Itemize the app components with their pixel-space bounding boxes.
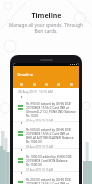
staticText: Timeline bbox=[17, 72, 34, 77]
button[interactable]: Rs 250.00 swiped by JOHN DOE 20190807 15… bbox=[13, 172, 79, 184]
staticText: Timeline bbox=[31, 11, 62, 21]
staticText: Manage all your spends. Through Bon card… bbox=[0, 22, 92, 34]
button[interactable]: Tab 4 bbox=[54, 80, 62, 88]
staticText: Rs 250.00 swiped by JOHN DOE 20190807 15… bbox=[26, 178, 74, 184]
button[interactable]: Rs 500.00 swiped by JOHN DOE 20190808 15… bbox=[13, 122, 79, 149]
button[interactable]: Tab 3 bbox=[42, 80, 50, 88]
staticText: 08 Aug 2019 10:15 AM bbox=[26, 145, 54, 149]
staticText: 08 Aug 2019 10:15 AM bbox=[26, 119, 54, 123]
staticText: Rs 1000.00 added by JOHN DOE 20190808 Ca… bbox=[26, 155, 72, 167]
button[interactable]: Tab 2 bbox=[30, 80, 38, 88]
staticText: Rs 500.00 swiped by JOHN DOE 20190808 15… bbox=[26, 128, 74, 144]
staticText: 07 Aug 2019 10:15 AM bbox=[26, 168, 54, 172]
button[interactable]: Rs 1000.00 added by JOHN DOE 20190808 Ca… bbox=[13, 149, 79, 172]
button[interactable]: Tab 5 bbox=[67, 80, 75, 88]
staticText: 08 Aug 2019 10:15 AM bbox=[18, 90, 53, 94]
button[interactable]: Tab 1 bbox=[17, 80, 25, 88]
button[interactable]: Rs 990.00 swiped by JOHN DOE 20190808 15… bbox=[13, 96, 79, 122]
staticText: Rs 990.00 swiped by JOHN DOE 20190808 15… bbox=[26, 102, 76, 118]
